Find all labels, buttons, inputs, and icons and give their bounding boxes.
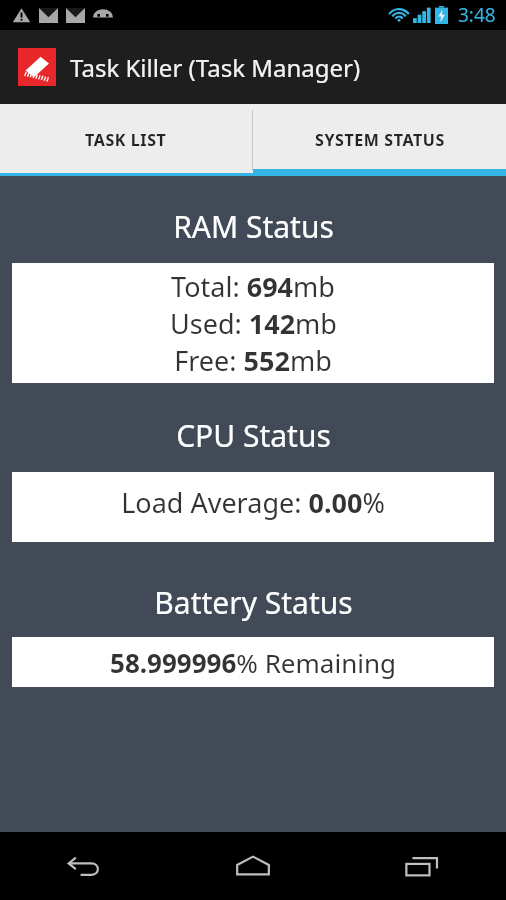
staticText: RAM Status <box>173 206 334 247</box>
staticText: Task Killer (Task Manager) <box>70 51 361 84</box>
button[interactable]: Load Average: 0.00% <box>12 472 494 542</box>
staticText: Free: 552mb <box>174 342 332 379</box>
staticText: Total: 694mb <box>171 268 335 305</box>
other: App icon <box>18 48 56 86</box>
staticText: 58.999996% Remaining <box>110 645 396 680</box>
button[interactable]: SYSTEM STATUS <box>253 104 506 176</box>
button[interactable]: Recent apps <box>337 832 506 900</box>
button[interactable]: Total: 694mb <box>12 263 494 383</box>
staticText: TASK LIST <box>85 129 167 151</box>
button[interactable]: TASK LIST <box>0 104 252 176</box>
staticText: Used: 142mb <box>170 305 337 342</box>
button[interactable]: Back <box>0 832 168 900</box>
staticText: 3:48 <box>458 2 496 28</box>
staticText: Load Average: 0.00% <box>121 484 385 521</box>
button[interactable]: Home <box>168 832 337 900</box>
staticText: CPU Status <box>176 415 331 456</box>
staticText: Battery Status <box>154 582 353 623</box>
staticText: SYSTEM STATUS <box>315 129 445 151</box>
button[interactable]: 58.999996% Remaining <box>12 637 494 687</box>
